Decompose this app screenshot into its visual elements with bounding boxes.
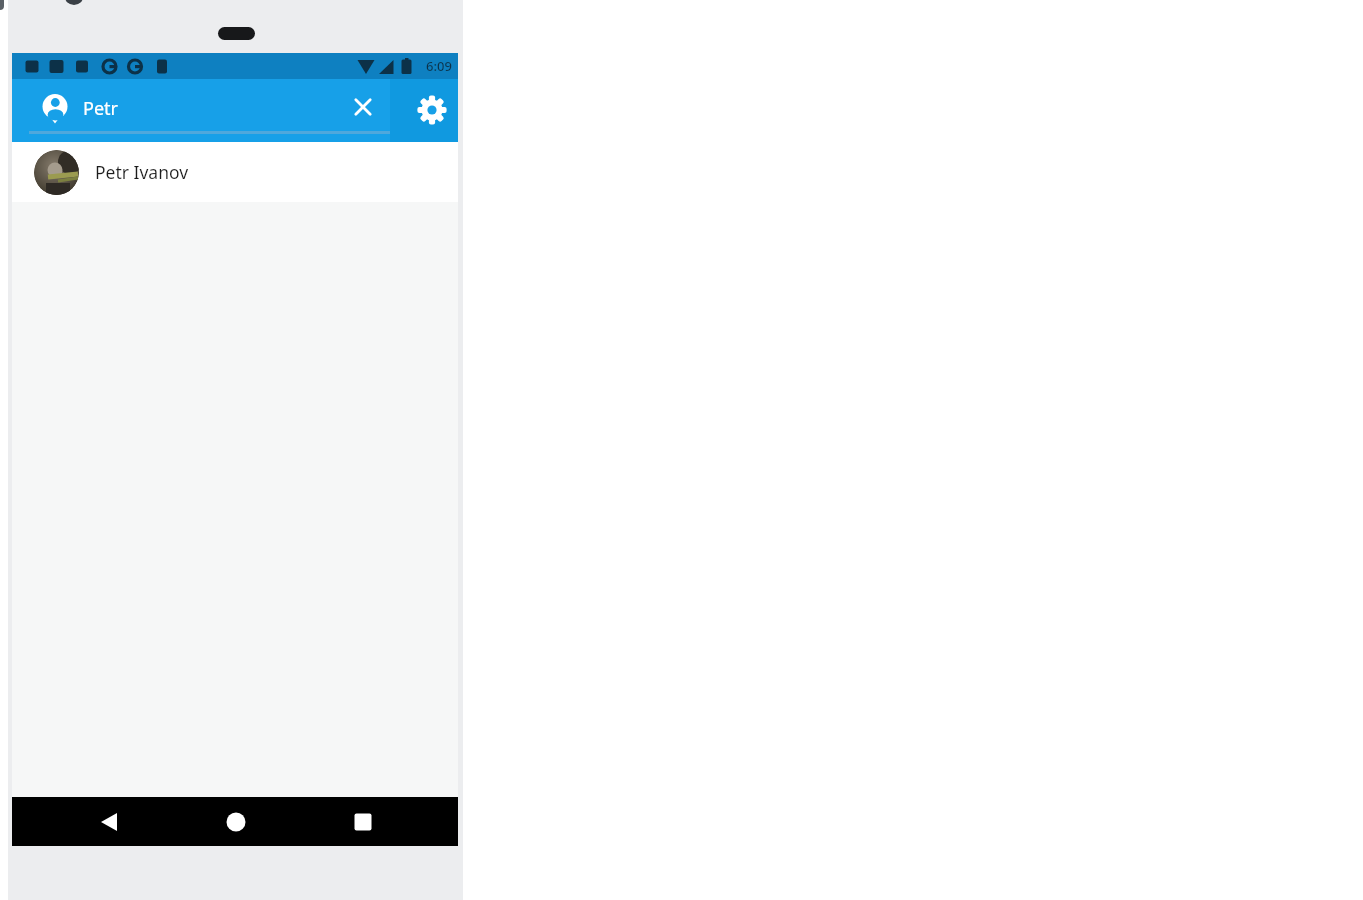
button[interactable]: Petr Ivanov [12, 142, 458, 202]
button[interactable]: Petr [29, 85, 359, 131]
staticText: 6:09 [426, 57, 452, 75]
button[interactable] [214, 800, 258, 844]
button[interactable] [341, 800, 385, 844]
button[interactable] [88, 800, 132, 844]
button[interactable] [414, 92, 450, 128]
staticText: Petr Ivanov [95, 160, 189, 184]
staticText: Petr [83, 96, 118, 121]
button[interactable] [349, 93, 377, 121]
